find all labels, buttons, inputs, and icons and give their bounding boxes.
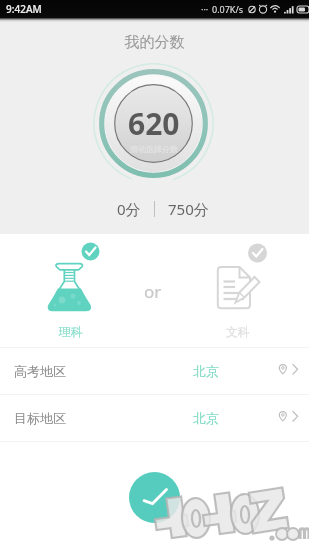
staticText: 高考地区	[14, 363, 66, 379]
staticText: 理科	[59, 324, 83, 339]
staticText: or	[144, 280, 162, 303]
staticText: 0分	[117, 199, 141, 219]
staticText: ···	[201, 3, 209, 15]
staticText: 9:42AM	[6, 2, 42, 16]
button[interactable]: 目标地区	[0, 395, 309, 441]
staticText: 北京	[193, 363, 219, 379]
staticText: 0.07K/s	[212, 3, 244, 15]
button[interactable]: Confirm	[129, 472, 180, 523]
staticText: 750分	[168, 199, 209, 219]
button[interactable]: 文科	[203, 240, 275, 340]
staticText: 滑动选择分数	[130, 144, 178, 154]
staticText: 文科	[226, 324, 250, 339]
staticText: 我的分数	[0, 33, 309, 52]
staticText: 目标地区	[14, 410, 66, 426]
button[interactable]: 高考地区	[0, 348, 309, 394]
button[interactable]: 理科	[36, 240, 108, 340]
staticText: 620	[128, 103, 180, 144]
staticText: 北京	[193, 410, 219, 426]
